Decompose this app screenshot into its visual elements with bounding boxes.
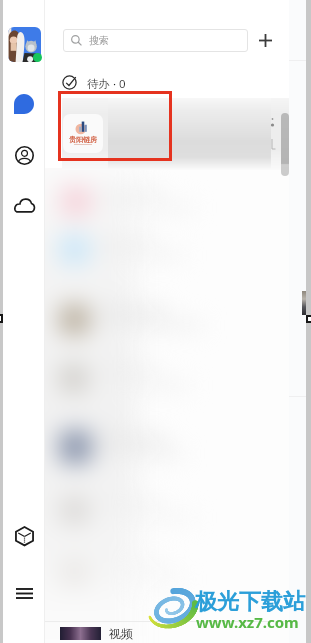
button[interactable]: Profile (8, 27, 42, 63)
staticText: 贵阳链房 (69, 135, 97, 144)
button[interactable]: Contacts (12, 143, 36, 167)
button[interactable]: Menu (12, 581, 36, 605)
staticText: 待办 · 0 (87, 76, 126, 92)
button[interactable]: 贵阳链房 (63, 114, 103, 153)
staticText: www.xz7.com (196, 612, 299, 632)
button[interactable]: Cloud Drive (12, 193, 36, 217)
button[interactable]: Add (257, 32, 274, 49)
staticText: 视频 (109, 626, 133, 641)
button[interactable]: Apps (12, 524, 36, 548)
button[interactable] (62, 98, 289, 170)
button[interactable]: 搜索 (63, 29, 248, 52)
staticText: 极光下载站 (195, 588, 305, 616)
button[interactable]: 待办 · 0 (60, 72, 130, 93)
staticText: 搜索 (89, 34, 109, 47)
button[interactable]: Chat (12, 92, 36, 116)
